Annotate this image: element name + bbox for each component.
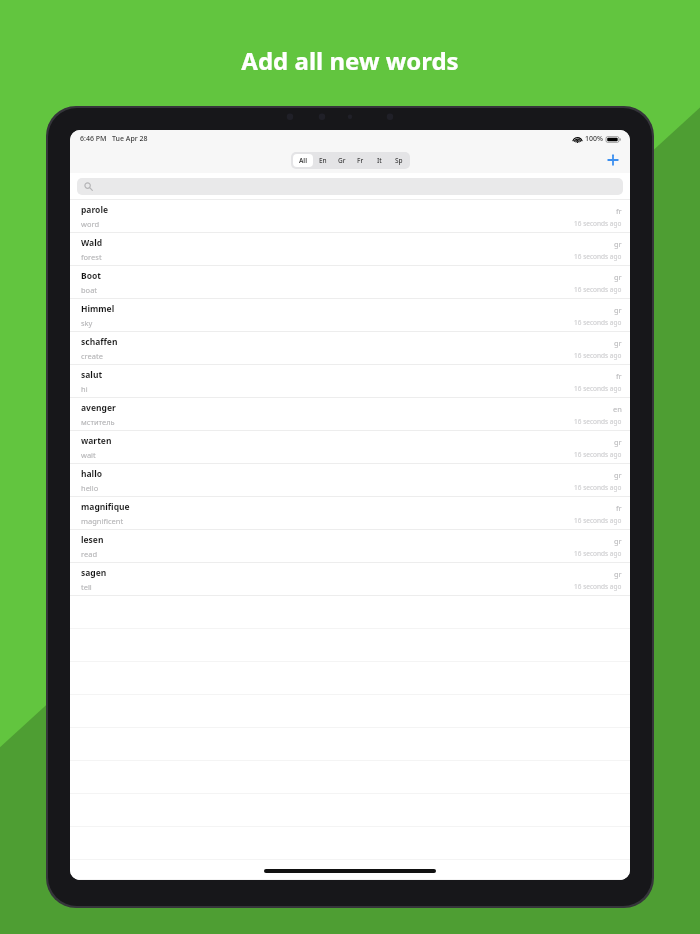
staticText: en bbox=[613, 404, 622, 414]
staticText: fr bbox=[616, 503, 622, 513]
staticText: Tue Apr 28 bbox=[112, 134, 148, 144]
staticText: boat bbox=[81, 285, 98, 295]
staticText: gr bbox=[614, 272, 622, 282]
staticText: read bbox=[81, 549, 97, 559]
staticText: Add all new words bbox=[0, 44, 700, 77]
staticText: gr bbox=[614, 470, 622, 480]
staticText: 6:46 PM bbox=[80, 134, 107, 144]
staticText: Wald bbox=[81, 237, 103, 249]
staticText: 16 seconds ago bbox=[574, 318, 622, 327]
staticText: 16 seconds ago bbox=[574, 516, 622, 525]
staticText: gr bbox=[614, 239, 622, 249]
staticText: gr bbox=[614, 305, 622, 315]
staticText: fr bbox=[616, 206, 622, 216]
button[interactable]: schaffen bbox=[70, 332, 630, 365]
staticText: 16 seconds ago bbox=[574, 582, 622, 591]
staticText: tell bbox=[81, 582, 92, 592]
staticText: 16 seconds ago bbox=[574, 450, 622, 459]
staticText: Boot bbox=[81, 270, 101, 282]
staticText: wait bbox=[81, 450, 96, 460]
button[interactable]: magnifique bbox=[70, 497, 630, 530]
button[interactable]: salut bbox=[70, 365, 630, 398]
button[interactable]: Add word bbox=[602, 149, 624, 171]
button[interactable]: Boot bbox=[70, 266, 630, 299]
button[interactable]: parole bbox=[70, 200, 630, 233]
button[interactable]: It bbox=[370, 154, 389, 167]
staticText: word bbox=[81, 219, 99, 229]
staticText: 16 seconds ago bbox=[574, 351, 622, 360]
staticText: gr bbox=[614, 536, 622, 546]
button[interactable]: sagen bbox=[70, 563, 630, 596]
staticText: It bbox=[377, 156, 382, 165]
staticText: All bbox=[299, 156, 308, 165]
staticText: 16 seconds ago bbox=[574, 483, 622, 492]
button[interactable]: warten bbox=[70, 431, 630, 464]
button[interactable]: Gr bbox=[332, 154, 351, 167]
staticText: 100% bbox=[585, 134, 603, 144]
staticText: create bbox=[81, 351, 103, 361]
staticText: forest bbox=[81, 252, 102, 262]
staticText: avenger bbox=[81, 402, 116, 414]
staticText: Sp bbox=[395, 156, 403, 165]
staticText: Gr bbox=[338, 156, 346, 165]
button[interactable]: hallo bbox=[70, 464, 630, 497]
staticText: hi bbox=[81, 384, 88, 394]
staticText: 16 seconds ago bbox=[574, 417, 622, 426]
button[interactable]: avenger bbox=[70, 398, 630, 431]
button[interactable]: Himmel bbox=[70, 299, 630, 332]
staticText: gr bbox=[614, 338, 622, 348]
button[interactable]: Fr bbox=[351, 154, 370, 167]
button[interactable]: All bbox=[293, 154, 313, 167]
staticText: gr bbox=[614, 569, 622, 579]
staticText: Himmel bbox=[81, 303, 115, 315]
button[interactable]: Sp bbox=[389, 154, 408, 167]
staticText: hello bbox=[81, 483, 99, 493]
staticText: lesen bbox=[81, 534, 104, 546]
staticText: 16 seconds ago bbox=[574, 219, 622, 228]
staticText: sky bbox=[81, 318, 93, 328]
staticText: fr bbox=[616, 371, 622, 381]
staticText: Fr bbox=[357, 156, 364, 165]
staticText: magnifique bbox=[81, 501, 130, 513]
staticText: 16 seconds ago bbox=[574, 384, 622, 393]
button[interactable]: En bbox=[313, 154, 332, 167]
staticText: warten bbox=[81, 435, 112, 447]
staticText: schaffen bbox=[81, 336, 118, 348]
staticText: gr bbox=[614, 437, 622, 447]
staticText: magnificent bbox=[81, 516, 124, 526]
staticText: En bbox=[319, 156, 327, 165]
staticText: 16 seconds ago bbox=[574, 285, 622, 294]
staticText: 16 seconds ago bbox=[574, 252, 622, 261]
staticText: parole bbox=[81, 204, 109, 216]
staticText: salut bbox=[81, 369, 103, 381]
staticText: hallo bbox=[81, 468, 102, 480]
button[interactable]: Wald bbox=[70, 233, 630, 266]
button[interactable]: lesen bbox=[70, 530, 630, 563]
staticText: мститель bbox=[81, 417, 115, 427]
staticText: 16 seconds ago bbox=[574, 549, 622, 558]
staticText: sagen bbox=[81, 567, 107, 579]
